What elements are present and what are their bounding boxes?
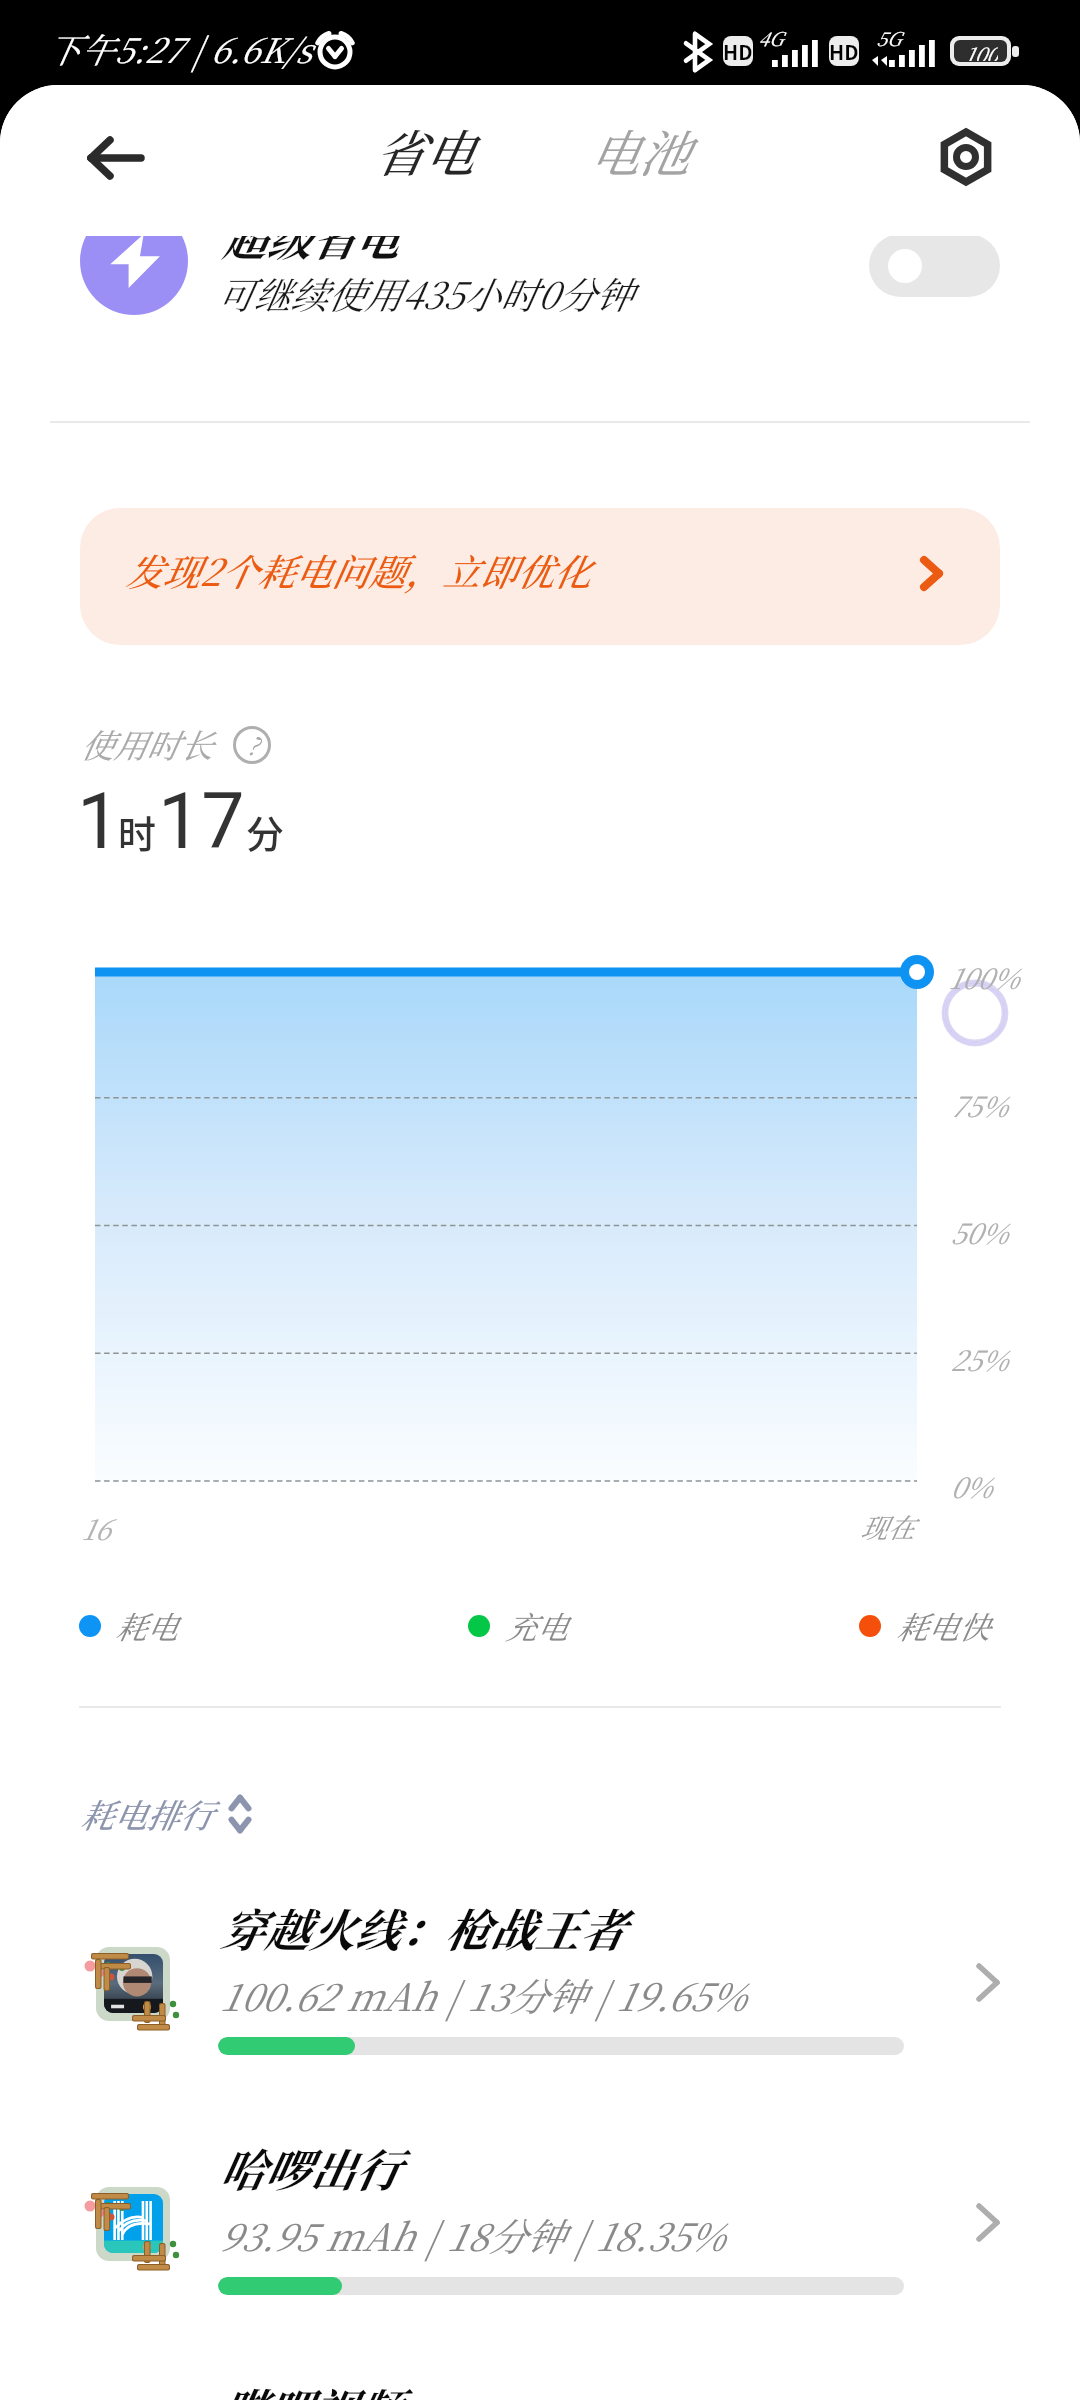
button[interactable]: 穿越火线：枪战王者	[0, 1899, 1080, 2139]
button[interactable]: Help	[232, 725, 272, 765]
staticText: 16	[81, 1508, 110, 1548]
button[interactable]: 超级省电 可继续使用435小时0分钟	[0, 236, 1080, 421]
staticText: 穿越火线：枪战王者	[219, 1895, 625, 1960]
staticText: ?	[247, 727, 258, 761]
staticText: HD	[829, 37, 859, 66]
staticText: 0%	[950, 1466, 992, 1506]
staticText: 75%	[950, 1085, 1007, 1125]
staticText: 充电	[505, 1603, 567, 1648]
staticText: 100	[964, 40, 998, 61]
staticText: 分	[246, 804, 285, 859]
staticText: 17	[158, 777, 245, 867]
button[interactable]: Back	[74, 117, 156, 199]
staticText: 哔哩视频	[219, 2375, 400, 2400]
button[interactable]: 哈啰出行	[0, 2139, 1080, 2379]
staticText: 发现2个耗电问题，立即优化	[125, 543, 591, 596]
staticText: 93.95 mAh | 18分钟 | 18.35%	[219, 2207, 724, 2262]
staticText: 1	[77, 777, 121, 867]
button[interactable]: 发现2个耗电问题，立即优化	[80, 508, 1000, 645]
staticText: 可继续使用435小时0分钟	[216, 266, 632, 319]
staticText: 100.62 mAh | 13分钟 | 19.65%	[219, 1967, 746, 2022]
button[interactable]: Toggle super power saving	[869, 236, 1000, 297]
staticText: 耗电排行	[80, 1790, 212, 1837]
staticText: 下午5:27 | 6.6K/s	[46, 24, 312, 73]
button[interactable]: 哔哩视频	[0, 2379, 1080, 2400]
button[interactable]: Settings	[925, 116, 1007, 198]
staticText: 5G	[876, 24, 901, 51]
staticText: 100%	[948, 957, 1019, 997]
button[interactable]: 电池	[568, 90, 708, 210]
staticText: HD	[723, 37, 753, 66]
staticText: 50%	[950, 1212, 1008, 1252]
staticText: 耗电快	[896, 1603, 989, 1648]
staticText: 4G	[758, 24, 783, 51]
staticText: 现在	[860, 1507, 914, 1546]
staticText: 哈啰出行	[219, 2135, 400, 2200]
staticText: 使用时长	[80, 720, 212, 767]
staticText: 时	[118, 804, 157, 859]
staticText: 省电	[373, 114, 473, 186]
staticText: 25%	[950, 1339, 1008, 1379]
button[interactable]: 省电	[353, 90, 493, 210]
button[interactable]: 耗电排行	[80, 1790, 252, 1837]
staticText: 耗电	[115, 1603, 177, 1648]
staticText: 电池	[588, 114, 688, 186]
staticText: 超级省电	[222, 236, 398, 268]
